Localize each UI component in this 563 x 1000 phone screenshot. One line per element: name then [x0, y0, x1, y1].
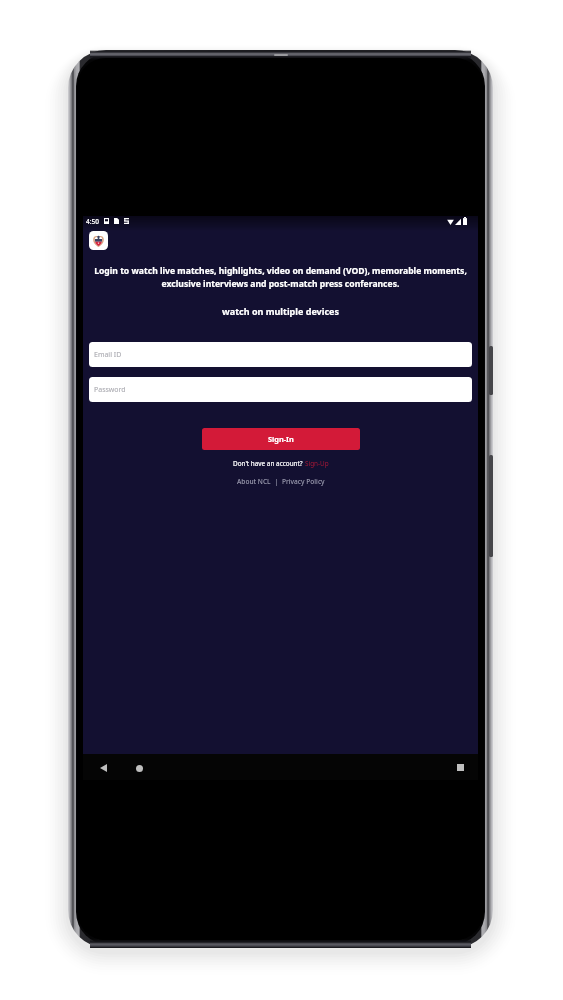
button[interactable]: Email ID	[89, 342, 472, 367]
button[interactable]: Back	[97, 762, 109, 774]
staticText: Sign-Up	[305, 459, 329, 468]
button[interactable]: About NCL	[237, 477, 271, 486]
staticText: Don't have an account?	[233, 459, 303, 468]
staticText: 4:50	[86, 217, 99, 226]
staticText: Email ID	[94, 350, 122, 360]
button[interactable]: NCL logo	[89, 231, 108, 250]
staticText: Password	[94, 385, 126, 395]
staticText: About NCL	[237, 477, 271, 486]
staticText: Login to watch live matches, highlights,…	[87, 265, 474, 290]
button[interactable]: Recent apps	[454, 761, 466, 773]
staticText: |	[271, 477, 282, 486]
staticText: Privacy Policy	[282, 477, 325, 486]
staticText: watch on multiple devices	[83, 305, 478, 317]
button[interactable]: Home	[133, 762, 145, 774]
button[interactable]: Privacy Policy	[282, 477, 325, 486]
button[interactable]: Password	[89, 377, 472, 402]
button[interactable]: Sign-In	[202, 428, 360, 450]
staticText: Sign-In	[268, 434, 294, 444]
button[interactable]: Sign-Up	[305, 459, 329, 468]
